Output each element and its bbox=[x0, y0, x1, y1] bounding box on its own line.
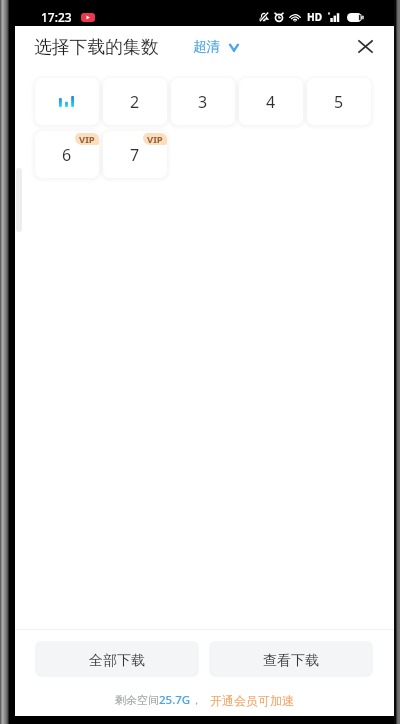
button[interactable]: 开通会员可加速 bbox=[210, 693, 294, 708]
button[interactable]: 5 bbox=[307, 78, 371, 125]
staticText: 剩余空间 bbox=[115, 693, 159, 707]
button[interactable]: 2 bbox=[103, 78, 167, 125]
staticText: ， bbox=[191, 693, 202, 707]
staticText: 6 bbox=[62, 144, 72, 166]
button[interactable]: 7 bbox=[103, 131, 167, 178]
staticText: VIP bbox=[147, 133, 163, 145]
staticText: HD bbox=[307, 10, 322, 24]
button[interactable]: 4 bbox=[239, 78, 303, 125]
button[interactable]: 查看下载 bbox=[209, 641, 373, 677]
staticText: 全部下载 bbox=[89, 652, 145, 670]
staticText: 2 bbox=[130, 91, 140, 113]
staticText: 17:23 bbox=[41, 9, 72, 25]
staticText: 5 bbox=[334, 91, 344, 113]
button[interactable] bbox=[35, 78, 99, 125]
staticText: 选择下载的集数 bbox=[34, 36, 159, 58]
staticText: 7 bbox=[130, 144, 140, 166]
staticText: 25.7G bbox=[159, 692, 191, 708]
button[interactable]: Close bbox=[349, 29, 383, 63]
staticText: 查看下载 bbox=[263, 652, 319, 670]
button[interactable]: 全部下载 bbox=[35, 641, 199, 677]
button[interactable]: 超清 bbox=[193, 32, 239, 61]
staticText: 3 bbox=[198, 91, 208, 113]
staticText: 超清 bbox=[193, 38, 220, 55]
staticText: VIP bbox=[79, 133, 95, 145]
button[interactable]: 3 bbox=[171, 78, 235, 125]
staticText: 4 bbox=[266, 91, 276, 113]
button[interactable]: 6 bbox=[35, 131, 99, 178]
